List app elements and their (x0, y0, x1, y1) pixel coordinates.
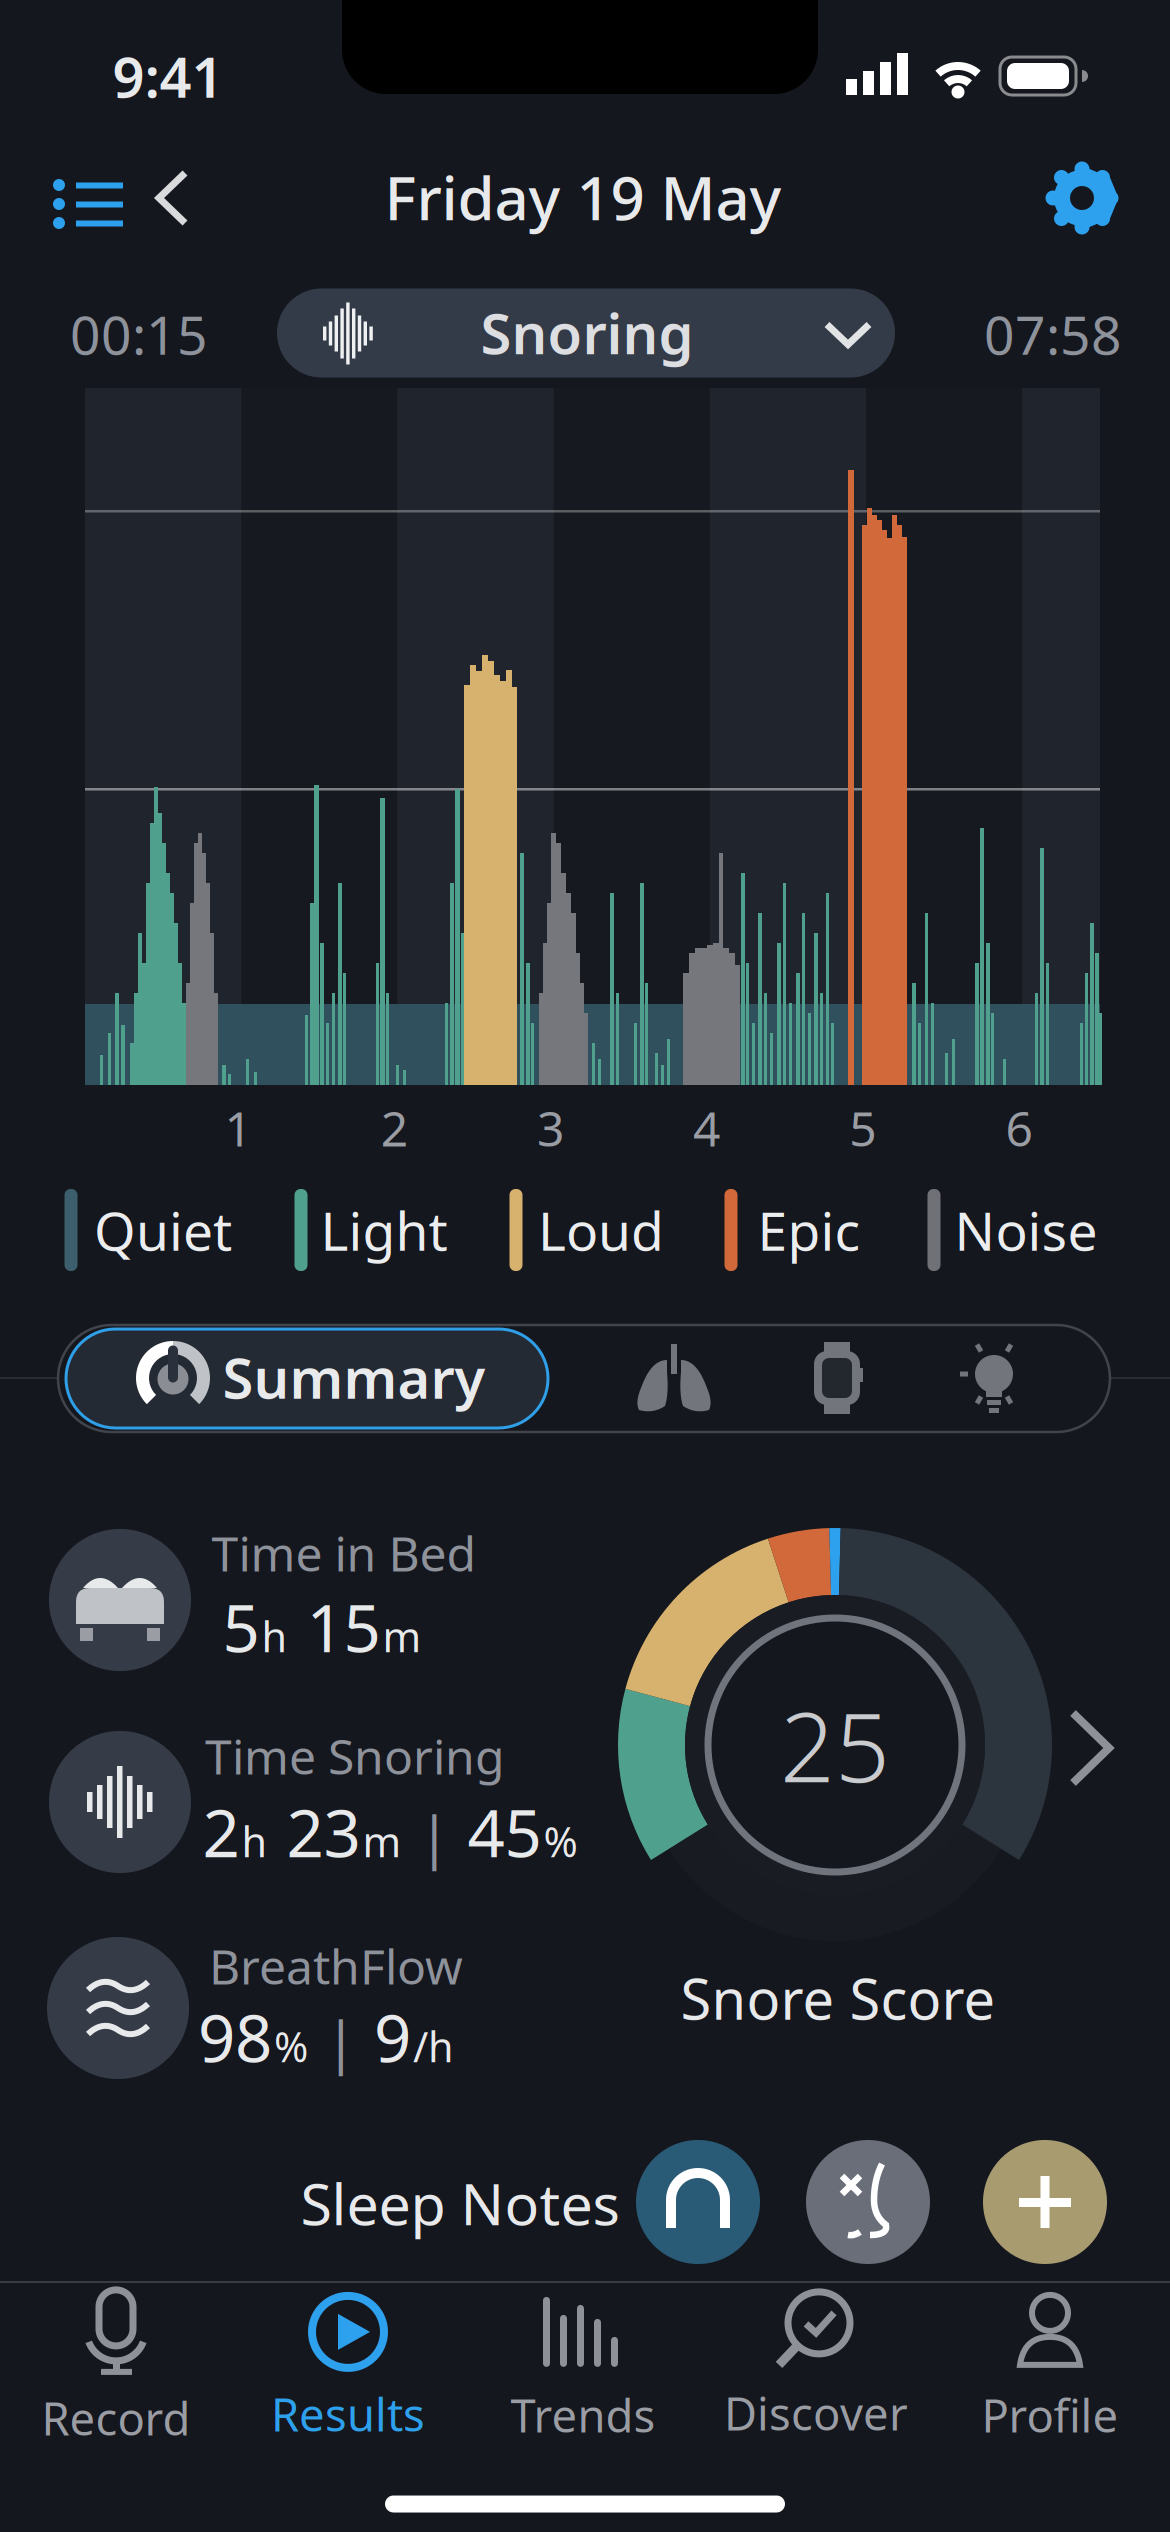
staticText: % (543, 1814, 577, 1869)
button[interactable]: Snore Score details (575, 1485, 1135, 2045)
staticText: Light (320, 1195, 447, 1265)
button[interactable]: Blocked nose note (806, 2140, 930, 2264)
staticText: Time Snoring (205, 1724, 505, 1788)
button[interactable]: Settings (1049, 165, 1115, 231)
button[interactable]: Insights (960, 1341, 1028, 1415)
button[interactable]: Session list (52, 174, 124, 224)
button[interactable]: Back (155, 170, 189, 226)
button[interactable]: Watch (811, 1342, 865, 1414)
button[interactable]: Add sleep note (983, 2140, 1107, 2264)
staticText: % (274, 2019, 308, 2074)
button[interactable]: Results (243, 2288, 453, 2448)
staticText: Loud (538, 1195, 664, 1265)
staticText: 15 (289, 1584, 380, 1670)
staticText: Sleep Notes (300, 2165, 619, 2241)
staticText: 1 (224, 1096, 251, 1160)
staticText: 2 (381, 1096, 408, 1160)
staticText: m (382, 1609, 421, 1664)
staticText: h (241, 1814, 267, 1869)
staticText: 5 (849, 1096, 876, 1160)
staticText: 98 (198, 1994, 272, 2080)
staticText: 23 (269, 1789, 360, 1875)
staticText: 2 (202, 1789, 239, 1875)
staticText: 25 (780, 1681, 890, 1809)
staticText: Time in Bed (211, 1521, 476, 1585)
staticText: 07:58 (984, 299, 1122, 369)
staticText: Snore Score (680, 1961, 995, 2035)
staticText: m (362, 1814, 401, 1869)
button[interactable]: Summary (66, 1329, 548, 1428)
staticText: | (310, 2002, 372, 2078)
staticText: 4 (693, 1096, 720, 1160)
staticText: 45 (467, 1789, 541, 1875)
staticText: Noise (954, 1195, 1097, 1265)
staticText: Trends (510, 2385, 655, 2445)
staticText: Profile (981, 2385, 1118, 2445)
staticText: Epic (757, 1195, 860, 1265)
staticText: 00:15 (70, 299, 208, 369)
staticText: h (261, 1609, 287, 1664)
staticText: Summary (222, 1340, 485, 1414)
staticText: Quiet (94, 1195, 232, 1265)
button[interactable]: Trends (478, 2288, 688, 2448)
staticText: Record (41, 2388, 190, 2448)
staticText: | (403, 1797, 465, 1873)
button[interactable]: Record (11, 2288, 221, 2448)
staticText: 3 (537, 1096, 564, 1160)
staticText: BreathFlow (209, 1934, 463, 1998)
staticText: 5 (222, 1584, 259, 1670)
staticText: /h (413, 2019, 454, 2074)
staticText: Discover (724, 2383, 908, 2443)
button[interactable]: Profile (945, 2288, 1155, 2448)
button[interactable]: Discover (706, 2286, 926, 2446)
staticText: Friday 19 May (384, 157, 781, 237)
staticText: 9 (374, 1994, 411, 2080)
staticText: 6 (1005, 1096, 1032, 1160)
staticText: Snoring (480, 295, 693, 370)
button[interactable]: Mouthguard note (636, 2140, 760, 2264)
staticText: Results (271, 2384, 425, 2444)
button[interactable]: Snoring chart selector (277, 288, 895, 377)
button[interactable]: BreathFlow (631, 1342, 717, 1414)
staticText: 9:41 (112, 39, 223, 113)
